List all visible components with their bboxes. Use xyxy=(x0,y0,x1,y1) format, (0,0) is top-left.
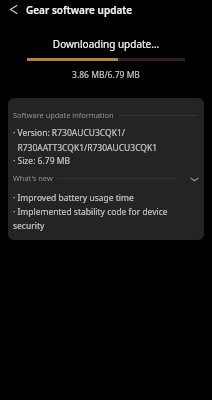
staticText: · Version: R730AUCU3CQK1/ xyxy=(13,127,125,139)
staticText: Downloading update… xyxy=(0,37,212,51)
staticText: · Implemented stability code for device xyxy=(13,206,168,218)
staticText: · Improved battery usage time xyxy=(13,192,134,204)
button[interactable]: What's new xyxy=(13,171,199,185)
staticText: Gear software update xyxy=(26,3,133,17)
staticText: What's new xyxy=(13,173,53,183)
staticText: security xyxy=(13,220,45,232)
staticText: · Size: 6.79 MB xyxy=(13,155,70,167)
staticText: Software update information xyxy=(13,110,114,120)
staticText: R730AATT3CQK1/R730AUCU3CQK1 xyxy=(13,142,158,154)
button[interactable]: Back xyxy=(0,0,26,19)
staticText: 3.86 MB/6.79 MB xyxy=(0,69,212,81)
